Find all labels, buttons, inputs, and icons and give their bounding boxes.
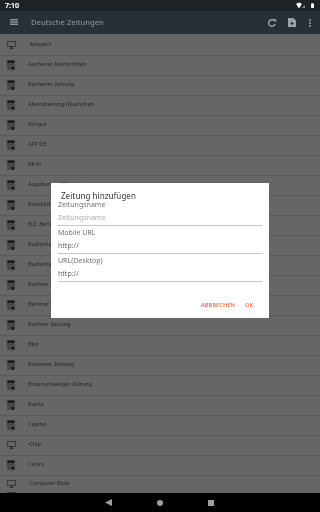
button[interactable]: Aachener Zeitung <box>0 76 320 96</box>
button[interactable]: ABBRECHEN <box>197 298 240 312</box>
staticText: Augsburger Allgemeine <box>28 180 91 188</box>
staticText: Aachener Nachrichten <box>28 60 87 68</box>
staticText: Mobile URL <box>58 228 96 238</box>
staticText: Deutsche Zeitungen <box>31 17 104 27</box>
staticText: http:// <box>58 241 79 251</box>
staticText: Berliner Zeitung <box>28 320 71 328</box>
button[interactable]: Achgut <box>0 116 320 136</box>
button[interactable]: Refresh <box>261 11 282 34</box>
staticText: http:// <box>58 269 79 279</box>
button[interactable]: Cicero <box>0 456 320 476</box>
button[interactable]: More options <box>302 11 317 34</box>
button[interactable]: Braunschweiger Zeitung <box>0 376 320 396</box>
button[interactable]: AFP DE <box>0 136 320 156</box>
staticText: 4players <box>29 40 52 48</box>
staticText: Capital <box>28 420 47 428</box>
button[interactable]: Back <box>98 493 118 512</box>
staticText: OK <box>245 301 254 309</box>
staticText: Aachener Zeitung <box>28 80 75 88</box>
staticText: Abendzeitung Muenchen <box>28 100 95 108</box>
button[interactable]: Home <box>150 493 170 512</box>
button[interactable]: Chip <box>0 436 320 456</box>
button[interactable]: Badische Neueste <box>0 236 320 256</box>
staticText: Berliner Kurier <box>28 280 67 288</box>
staticText: Bild <box>28 340 38 348</box>
staticText: Bunte <box>28 400 44 408</box>
staticText: B.Z. Berlin <box>28 220 55 228</box>
staticText: Berliner Morgenpost <box>28 300 83 308</box>
button[interactable]: Augsburger Allgemeine <box>0 176 320 196</box>
button[interactable]: Autobild <box>0 196 320 216</box>
button[interactable]: Bild <box>0 336 320 356</box>
button[interactable]: OK <box>241 298 258 312</box>
button[interactable]: All-in <box>0 156 320 176</box>
staticText: 7:10 <box>5 1 19 11</box>
staticText: Borkener Zeitung <box>28 360 75 368</box>
staticText: Zeitung hinzufügen <box>61 190 136 201</box>
button[interactable]: Abendzeitung Muenchen <box>0 96 320 116</box>
staticText: All-in <box>28 160 42 168</box>
button[interactable]: Bunte <box>0 396 320 416</box>
staticText: AFP DE <box>28 140 47 148</box>
staticText: Zeitungsname <box>58 200 106 210</box>
button[interactable]: Borkener Zeitung <box>0 356 320 376</box>
staticText: Achgut <box>28 120 47 128</box>
staticText: Computer Base <box>29 479 70 487</box>
staticText: Badische Neueste <box>28 240 75 248</box>
staticText: ABBRECHEN <box>201 301 236 309</box>
button[interactable]: Berliner Morgenpost <box>0 296 320 316</box>
button[interactable]: Aachener Nachrichten <box>0 56 320 76</box>
button[interactable]: Berliner Kurier <box>0 276 320 296</box>
staticText: Autobild <box>28 200 51 208</box>
staticText: URL(Desktop) <box>58 256 103 266</box>
staticText: Badische Zeitung <box>28 260 74 268</box>
button[interactable]: Add newspaper <box>282 11 302 34</box>
button[interactable]: Capital <box>0 416 320 436</box>
staticText: Zeitungsname <box>58 213 106 223</box>
button[interactable]: Recents <box>201 493 221 512</box>
staticText: Chip <box>29 440 41 448</box>
button[interactable]: Computer Base <box>0 476 320 493</box>
button[interactable]: B.Z. Berlin <box>0 216 320 236</box>
button[interactable]: Menu <box>5 10 22 33</box>
staticText: Braunschweiger Zeitung <box>28 380 93 388</box>
staticText: Cicero <box>28 460 45 468</box>
button[interactable]: 4players <box>0 36 320 56</box>
button[interactable]: Berliner Zeitung <box>0 316 320 336</box>
button[interactable]: Badische Zeitung <box>0 256 320 276</box>
